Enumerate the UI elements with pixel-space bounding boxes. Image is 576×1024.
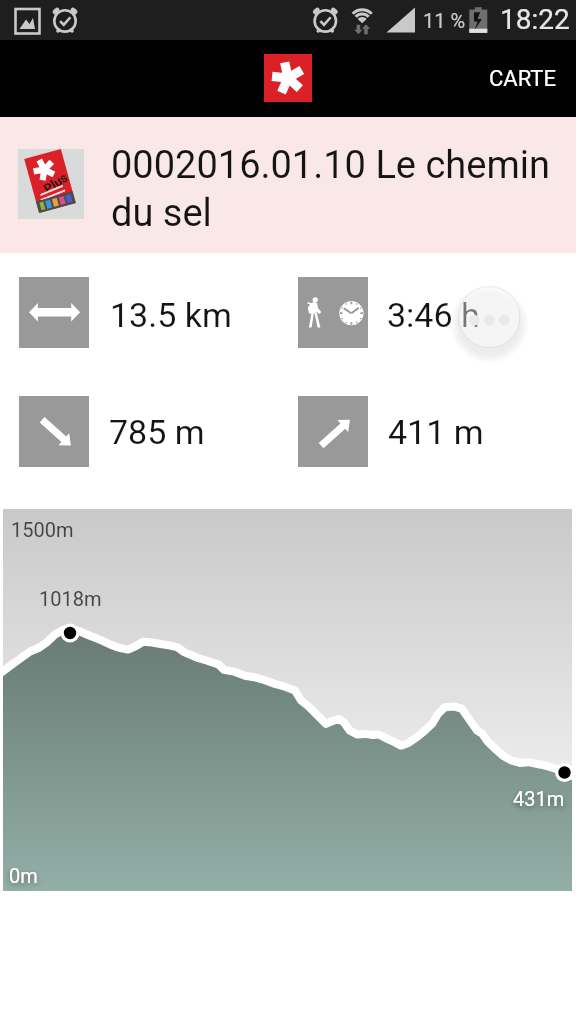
staticText: 431m [513, 787, 565, 810]
button[interactable]: SchweizMobil logo [264, 54, 312, 102]
staticText: 11 % [423, 9, 466, 32]
button[interactable]: 411 m [298, 396, 548, 467]
staticText: 1018m [39, 587, 102, 610]
staticText: 0002016.01.10 Le chemin du sel [111, 143, 550, 235]
staticText: 0m [9, 864, 38, 887]
button[interactable]: 3:46 h [298, 277, 548, 348]
staticText: 411 m [388, 412, 484, 452]
staticText: 785 m [109, 412, 205, 452]
button[interactable]: 785 m [19, 396, 279, 467]
button[interactable]: Plus [0, 117, 576, 253]
staticText: 1500m [11, 518, 74, 541]
button[interactable]: More options [459, 287, 520, 348]
staticText: Plus [39, 168, 73, 198]
staticText: CARTE [489, 66, 556, 92]
staticText: 18:22 [500, 3, 570, 36]
button[interactable]: CARTE [467, 40, 576, 117]
button[interactable]: 13.5 km [19, 277, 279, 348]
staticText: 3:46 h [387, 295, 480, 335]
staticText: 13.5 km [110, 295, 232, 335]
